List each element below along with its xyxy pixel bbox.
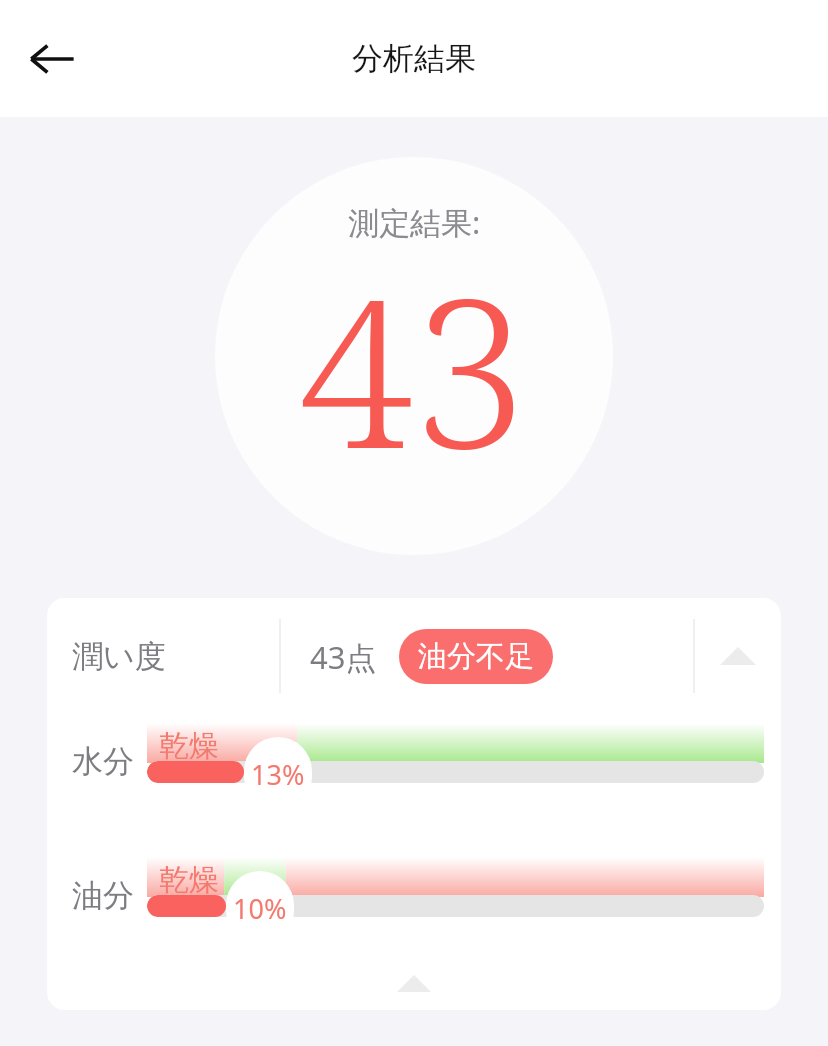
staticText: 43	[299, 229, 529, 508]
staticText: 水分	[72, 742, 134, 781]
staticText: 乾燥	[159, 727, 219, 765]
button[interactable]: 潤い度	[47, 598, 781, 714]
button[interactable]: Collapse section	[704, 622, 772, 690]
staticText: 油分	[72, 876, 134, 915]
staticText: 測定結果:	[348, 201, 481, 243]
staticText: 43点	[310, 636, 377, 678]
button[interactable]: Back	[16, 23, 88, 95]
staticText: 10%	[233, 890, 287, 927]
staticText: 分析結果	[352, 39, 476, 78]
staticText: 油分不足	[418, 638, 534, 675]
staticText: 潤い度	[72, 637, 166, 676]
staticText: 乾燥	[159, 861, 219, 899]
staticText: 13%	[251, 756, 305, 793]
